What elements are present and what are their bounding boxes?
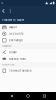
button[interactable]: Backup data	[0, 55, 56, 62]
staticText: Backup data	[9, 57, 25, 60]
button[interactable]: Terms of service	[0, 67, 56, 74]
button[interactable]: Exchange	[0, 37, 56, 43]
button[interactable]: Back	[6, 92, 16, 100]
button[interactable]: Accounts	[0, 30, 56, 37]
staticText: MORE OPTIONS	[2, 64, 14, 66]
button[interactable]: Home	[23, 92, 33, 100]
staticText: Transfer to wallet	[2, 18, 24, 22]
staticText: Accounts	[9, 32, 23, 35]
button[interactable]: More options	[7, 7, 13, 15]
button[interactable]: Back	[0, 7, 7, 15]
staticText: Terms of service	[9, 69, 32, 72]
staticText: Exchange	[9, 39, 23, 42]
staticText: TRANSFERS	[2, 45, 11, 48]
button[interactable]: Wallet	[0, 24, 56, 30]
staticText: Share	[9, 51, 17, 54]
button[interactable]: Share	[0, 49, 56, 55]
button[interactable]: Recent apps	[39, 92, 49, 100]
staticText: Wallet	[9, 26, 17, 29]
